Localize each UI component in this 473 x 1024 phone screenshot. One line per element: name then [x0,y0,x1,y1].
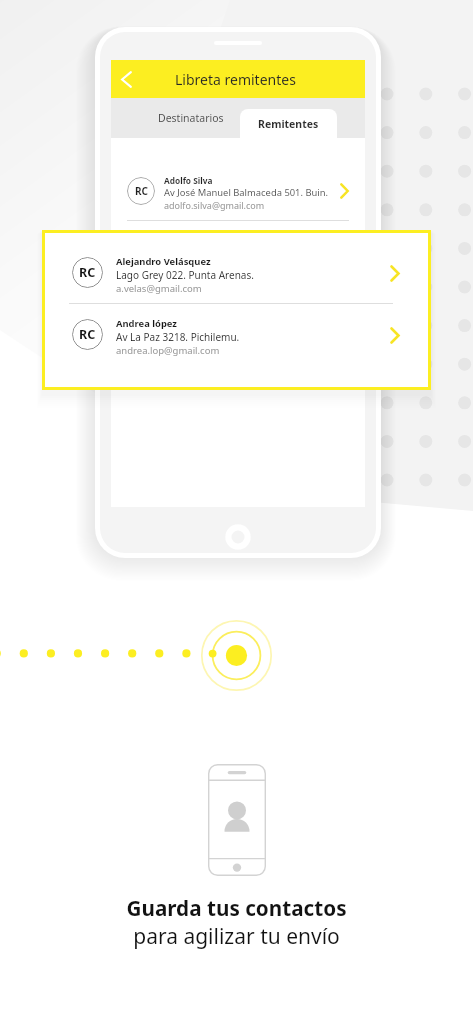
staticText: RC [79,264,96,281]
staticText: RC [135,184,148,198]
button[interactable]: Remitentes [240,109,337,138]
staticText: adolfo.silva@gmail.com [164,199,265,211]
button[interactable]: RC [111,169,365,213]
staticText: Adolfo Silva [164,175,213,186]
staticText: andrea.lop@gmail.com [116,344,220,357]
staticText: Libreta remitentes [175,70,296,89]
staticText: Guarda tus contactos [126,894,347,922]
button[interactable]: RC [42,242,431,303]
staticText: RC [79,326,96,343]
staticText: Av La Paz 3218. Pichilemu. [116,330,240,344]
staticText: para agilizar tu envío [133,922,340,951]
staticText: Lago Grey 022. Punta Arenas. [116,268,254,282]
staticText: Alejandro Velásquez [116,255,211,268]
staticText: a.velas@gmail.com [116,282,202,295]
button[interactable]: Open contact [380,320,410,350]
button[interactable]: Open contact [331,178,357,204]
button[interactable]: Back [111,60,141,98]
staticText: Andrea lópez [116,317,177,330]
button[interactable]: Destinatarios [111,98,271,138]
staticText: Destinatarios [158,111,224,125]
button[interactable]: RC [42,304,431,365]
button[interactable]: Open contact [380,258,410,288]
staticText: Remitentes [258,117,319,131]
staticText: Av José Manuel Balmaceda 501. Buin. [164,186,329,199]
